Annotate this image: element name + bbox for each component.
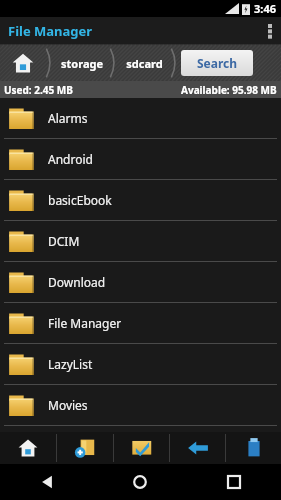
- button[interactable]: Back: [0, 464, 93, 500]
- button[interactable]: New folder: [57, 432, 113, 464]
- button[interactable]: Paste: [226, 432, 281, 464]
- staticText: 3:46: [254, 1, 276, 16]
- button[interactable]: sdcard: [118, 45, 170, 81]
- staticText: Used: 2.45 MB: [4, 83, 73, 97]
- staticText: sdcard: [126, 56, 163, 71]
- button[interactable]: Movies: [0, 385, 281, 425]
- staticText: basicEbook: [48, 192, 112, 208]
- button[interactable]: Select: [114, 432, 169, 464]
- staticText: Search: [197, 55, 238, 71]
- button[interactable]: More options: [259, 17, 281, 45]
- button[interactable]: File Manager: [0, 303, 281, 343]
- button[interactable]: Home: [93, 464, 187, 500]
- button[interactable]: Android: [0, 139, 281, 179]
- staticText: Movies: [48, 397, 88, 413]
- button[interactable]: LazyList: [0, 344, 281, 384]
- staticText: File Manager: [8, 22, 93, 40]
- staticText: storage: [61, 56, 103, 71]
- staticText: Android: [48, 151, 93, 167]
- button[interactable]: storage: [54, 45, 109, 81]
- staticText: LazyList: [48, 356, 93, 372]
- staticText: DCIM: [48, 233, 80, 249]
- button[interactable]: basicEbook: [0, 180, 281, 220]
- button[interactable]: Search: [181, 50, 253, 76]
- button[interactable]: Back: [170, 432, 225, 464]
- staticText: Available: 95.98 MB: [181, 83, 277, 97]
- button[interactable]: Alarms: [0, 98, 281, 138]
- staticText: Download: [48, 274, 106, 290]
- staticText: Alarms: [48, 110, 88, 126]
- staticText: File Manager: [48, 315, 122, 331]
- button[interactable]: Download: [0, 262, 281, 302]
- button[interactable]: Recent apps: [187, 464, 281, 500]
- button[interactable]: Home: [0, 432, 56, 464]
- button[interactable]: DCIM: [0, 221, 281, 261]
- button[interactable]: Home: [0, 45, 45, 81]
